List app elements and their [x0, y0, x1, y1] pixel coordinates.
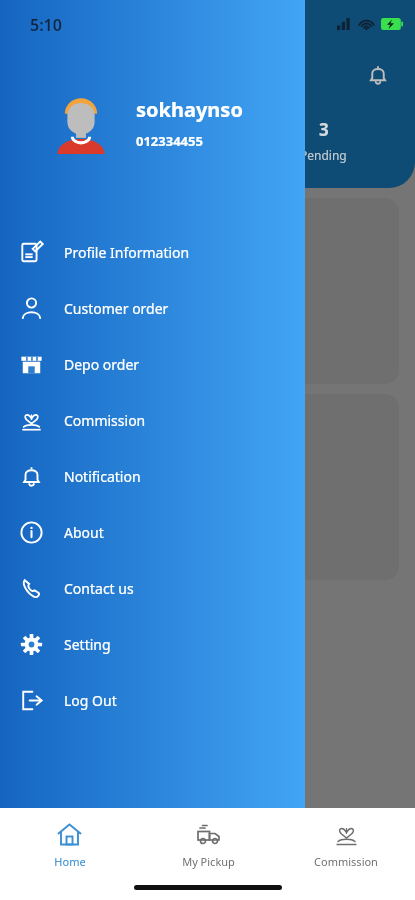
staticText: Send package [168, 343, 247, 359]
staticText: 012334455 [136, 132, 203, 150]
button[interactable]: About [0, 504, 305, 560]
staticText: Customer order [64, 299, 169, 318]
button[interactable]: Commission [277, 822, 415, 869]
button[interactable]: Notification [0, 448, 305, 504]
staticText: About [64, 523, 104, 542]
staticText: Notification [64, 467, 141, 486]
staticText: Commission [314, 854, 378, 869]
staticText: Depo order [64, 355, 140, 374]
staticText: 5:10 [30, 14, 62, 36]
button[interactable]: Log Out [0, 672, 305, 728]
staticText: Profile Information [64, 243, 190, 262]
staticText: Home [54, 854, 86, 869]
staticText: sokhaynso [136, 96, 243, 123]
staticText: Setting [64, 635, 111, 654]
button[interactable]: Customer order [0, 280, 305, 336]
staticText: Depo order [162, 508, 254, 531]
staticText: Contact us [64, 579, 134, 598]
button[interactable]: Contact us [0, 560, 305, 616]
button[interactable]: Depo order [16, 394, 399, 580]
staticText: Commission [64, 411, 146, 430]
button[interactable]: sokhaynso [0, 92, 305, 154]
staticText: Depo order [162, 312, 254, 335]
staticText: Send package [168, 539, 247, 555]
staticText: My Pickup [182, 854, 235, 869]
button[interactable]: Home [0, 822, 139, 869]
staticText: 3 [319, 118, 329, 141]
button[interactable]: Setting [0, 616, 305, 672]
button[interactable]: Profile Information [0, 224, 305, 280]
button[interactable]: Depo order [0, 336, 305, 392]
button[interactable]: Commission [0, 392, 305, 448]
button[interactable]: Notifications [361, 58, 395, 92]
button[interactable]: Depo order [16, 198, 399, 384]
staticText: Log Out [64, 691, 117, 710]
staticText: Pending [300, 147, 347, 163]
button[interactable]: My Pickup [139, 822, 277, 869]
